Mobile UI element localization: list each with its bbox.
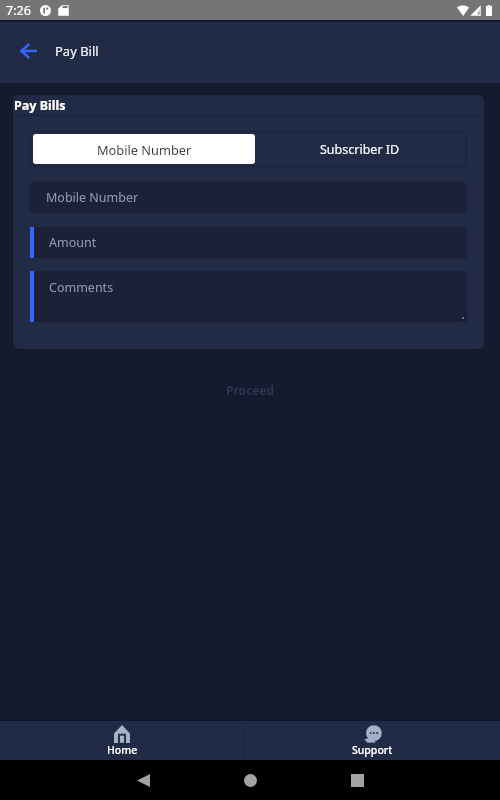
button[interactable]: Back [123, 760, 163, 800]
button[interactable]: Back [12, 35, 44, 67]
staticText: Mobile Number [46, 189, 139, 206]
button[interactable]: Home [0, 721, 244, 760]
button[interactable]: Mobile Number [30, 182, 467, 213]
button[interactable]: Home [230, 760, 270, 800]
button[interactable]: Proceed [0, 377, 500, 403]
button[interactable]: Support [245, 721, 500, 760]
staticText: Pay Bill [55, 42, 99, 60]
staticText: Mobile Number [97, 141, 192, 158]
staticText: 7:26 [6, 2, 31, 19]
staticText: Amount [49, 234, 97, 251]
staticText: Comments [49, 279, 114, 296]
staticText: Subscriber ID [320, 141, 400, 158]
staticText: Pay Bills [14, 97, 66, 114]
button[interactable]: Comments [34, 271, 467, 322]
staticText: Support [352, 743, 393, 757]
button[interactable]: Amount [34, 227, 467, 258]
staticText: Proceed [226, 382, 275, 398]
staticText: Home [107, 743, 138, 757]
button[interactable]: Subscriber ID [255, 134, 464, 164]
button[interactable]: Mobile Number [33, 134, 255, 164]
button[interactable]: Recent apps [337, 760, 377, 800]
